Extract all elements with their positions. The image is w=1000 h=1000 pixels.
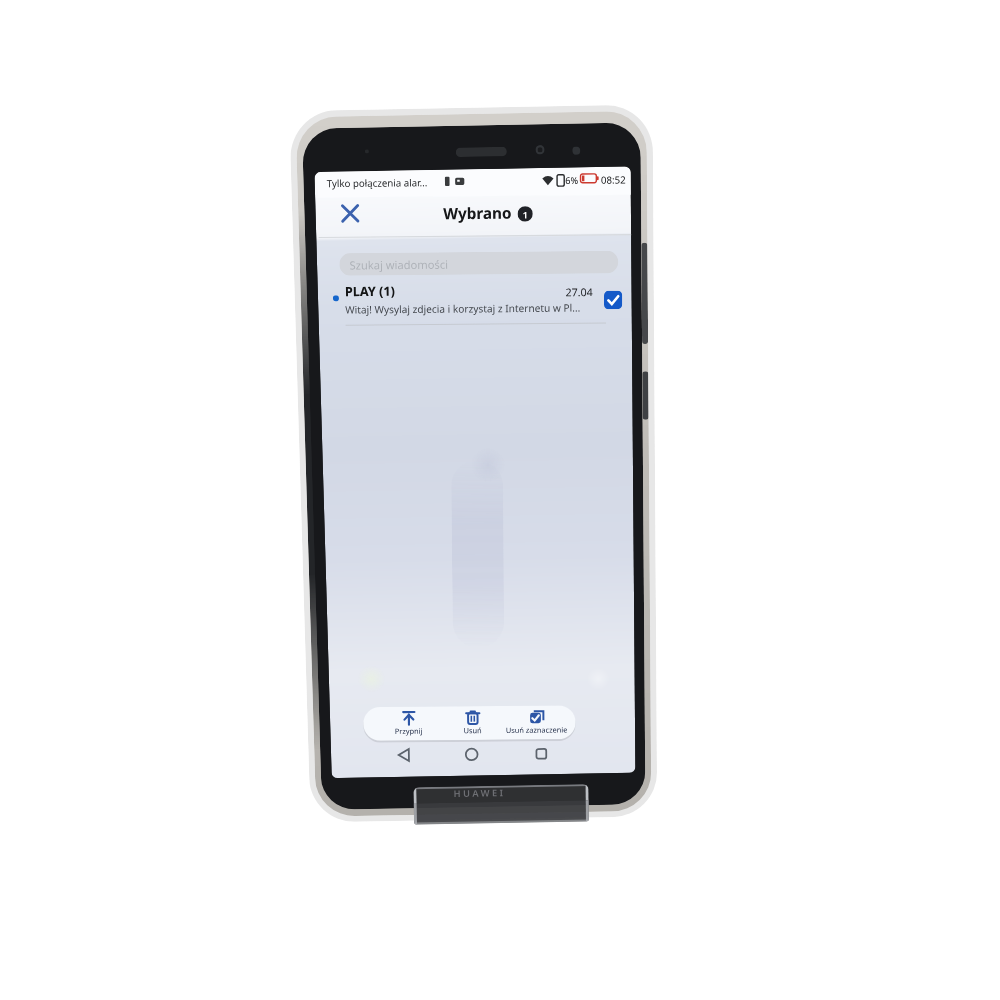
staticText: Szukaj wiadomości — [349, 255, 449, 274]
button[interactable] — [337, 200, 362, 226]
staticText: 6% — [565, 173, 579, 186]
staticText: Wybrano — [443, 201, 513, 224]
staticText: Przypnij — [395, 726, 423, 736]
button[interactable] — [604, 290, 622, 309]
button[interactable]: Przypnij — [376, 706, 441, 741]
button[interactable]: Szukaj wiadomości — [339, 248, 618, 278]
staticText: 27.04 — [565, 285, 593, 300]
staticText: HUAWEI — [453, 786, 506, 800]
staticText: 1 — [522, 208, 529, 221]
button[interactable] — [463, 745, 481, 763]
button[interactable] — [532, 745, 550, 763]
staticText: Usuń — [463, 725, 482, 735]
staticText: Tylko połączenia alar... — [326, 175, 428, 191]
button[interactable]: PLAY (1) — [321, 274, 632, 329]
staticText: Witaj! Wysylaj zdjecia i korzystaj z Int… — [345, 298, 581, 319]
button[interactable]: Usuń zaznaczenie — [504, 705, 569, 740]
staticText: Usuń zaznaczenie — [506, 724, 568, 735]
button[interactable] — [394, 746, 412, 764]
staticText: PLAY (1) — [345, 282, 396, 301]
staticText: 08:52 — [601, 173, 626, 187]
button[interactable]: Usuń — [440, 705, 505, 741]
